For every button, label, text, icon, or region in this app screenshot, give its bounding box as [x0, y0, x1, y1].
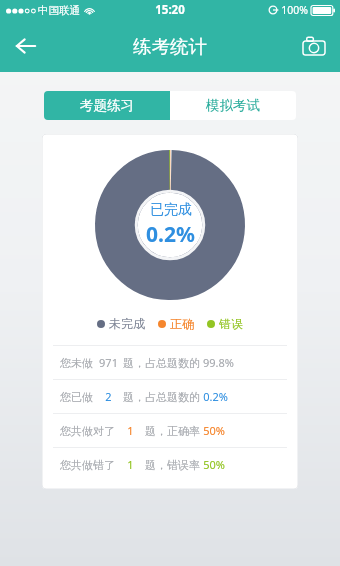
button[interactable]: Camera — [294, 26, 334, 66]
staticText: 您已做 — [60, 390, 93, 404]
staticText: 971 — [99, 355, 118, 370]
staticText: 考题练习 — [80, 97, 134, 114]
staticText: 练考统计 — [133, 35, 207, 58]
staticText: 错误 — [219, 316, 243, 331]
staticText: 中国联通 — [38, 4, 80, 17]
staticText: 50% — [203, 423, 225, 438]
button[interactable]: 模拟考试 — [170, 91, 296, 120]
staticText: 99.8% — [203, 355, 234, 370]
staticText: 题，占总题数的 — [123, 390, 200, 404]
staticText: 题，正确率 — [145, 424, 200, 438]
staticText: 1 — [127, 457, 134, 472]
staticText: 未完成 — [109, 316, 145, 331]
staticText: 50% — [203, 457, 225, 472]
staticText: 您共做错了 — [60, 458, 115, 472]
staticText: 100% — [281, 3, 308, 17]
staticText: 正确 — [170, 316, 194, 331]
staticText: 2 — [105, 389, 112, 404]
staticText: 模拟考试 — [206, 97, 260, 114]
staticText: 0.2% — [203, 389, 228, 404]
staticText: 0.2% — [146, 220, 195, 249]
staticText: 您共做对了 — [60, 424, 115, 438]
staticText: 题，错误率 — [145, 458, 200, 472]
staticText: 1 — [127, 423, 134, 438]
button[interactable]: 考题练习 — [44, 91, 170, 120]
staticText: 15:20 — [155, 2, 185, 18]
staticText: 您未做 — [60, 356, 93, 370]
button[interactable]: Back — [4, 24, 48, 68]
staticText: 已完成 — [150, 201, 192, 219]
staticText: 题，占总题数的 — [123, 356, 200, 370]
